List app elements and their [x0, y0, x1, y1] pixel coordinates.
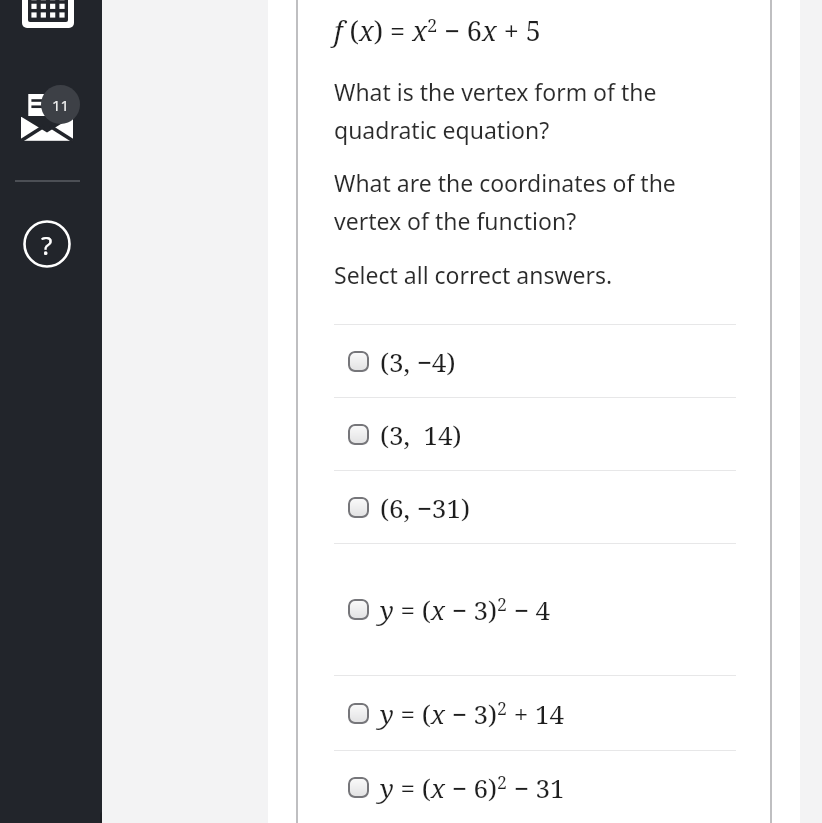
button[interactable]: y = (x − 3)2 − 4: [334, 544, 736, 675]
staticText: Select all correct answers.: [334, 259, 613, 290]
button[interactable]: y = (x − 3)2 + 14: [334, 676, 736, 750]
staticText: (3, 14): [380, 417, 462, 452]
button[interactable]: (6, −31): [334, 471, 736, 543]
staticText: ?: [41, 227, 53, 262]
button[interactable]: (3, −4): [334, 325, 736, 397]
button[interactable]: Calculator: [22, 0, 74, 28]
staticText: (6, −31): [380, 490, 470, 525]
staticText: y = (x − 3)2 − 4: [380, 592, 551, 627]
button[interactable]: y = (x − 6)2 − 31: [334, 751, 736, 823]
button[interactable]: Help: [23, 220, 71, 268]
staticText: (3, −4): [380, 344, 456, 379]
button[interactable]: Messages: [21, 94, 73, 146]
staticText: What are the coordinates of the vertex o…: [334, 167, 676, 237]
staticText: y = (x − 3)2 + 14: [380, 696, 565, 731]
staticText: What is the vertex form of the quadratic…: [334, 76, 657, 146]
staticText: y = (x − 6)2 − 31: [380, 770, 565, 805]
staticText: 11: [52, 95, 70, 115]
staticText: f (x) = x2 − 6x + 5: [334, 12, 541, 49]
button[interactable]: (3, 14): [334, 398, 736, 470]
